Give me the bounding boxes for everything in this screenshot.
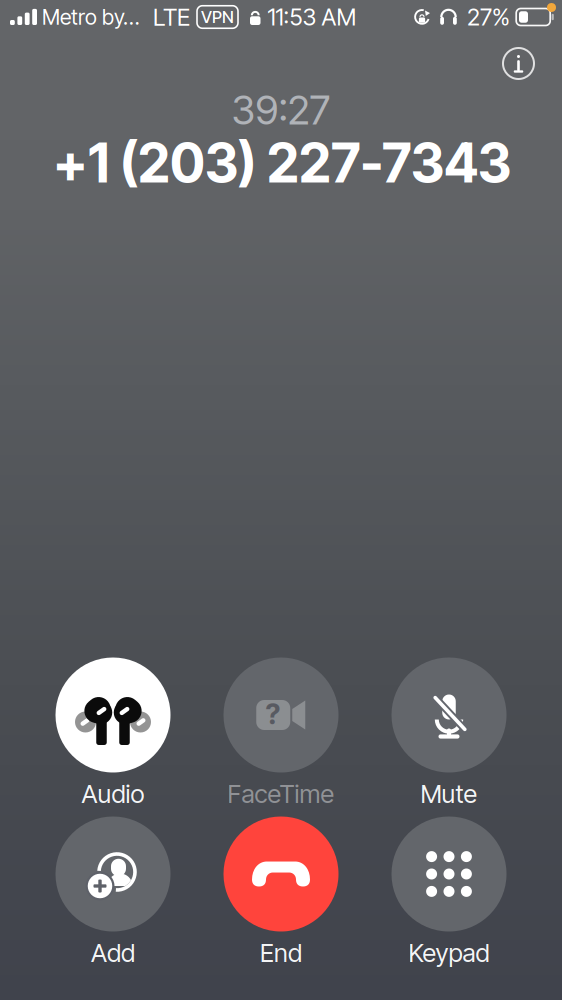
staticText: Keypad bbox=[408, 937, 489, 968]
staticText: Metro by… bbox=[42, 4, 140, 30]
button[interactable]: Call info bbox=[496, 41, 540, 85]
staticText: Audio bbox=[81, 778, 144, 809]
staticText: 11:53 AM bbox=[267, 3, 356, 31]
staticText: 27% bbox=[467, 3, 510, 31]
staticText: FaceTime bbox=[227, 778, 334, 809]
button[interactable]: Add bbox=[29, 816, 197, 986]
staticText: VPN bbox=[201, 7, 234, 27]
staticText: +1 (203) 227-7343 bbox=[53, 131, 511, 195]
staticText: Mute bbox=[420, 778, 477, 809]
staticText: LTE bbox=[153, 2, 190, 31]
button[interactable]: ? bbox=[197, 657, 365, 827]
button[interactable]: Keypad bbox=[365, 816, 533, 986]
staticText: Add bbox=[91, 937, 135, 968]
staticText: End bbox=[260, 937, 302, 968]
button[interactable]: Mute bbox=[365, 657, 533, 827]
staticText: ? bbox=[265, 697, 280, 731]
staticText: 39:27 bbox=[231, 86, 330, 134]
button[interactable]: End bbox=[197, 816, 365, 986]
button[interactable]: Audio bbox=[29, 657, 197, 827]
